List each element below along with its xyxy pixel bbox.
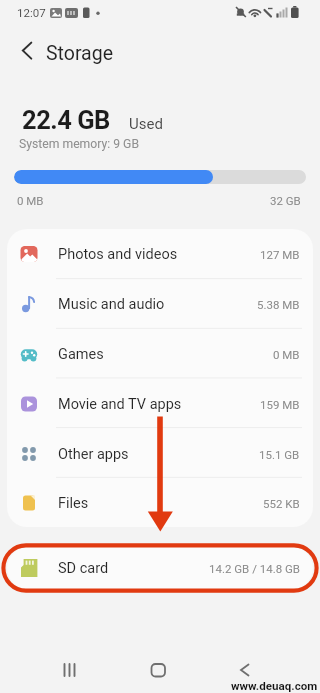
staticText: SD card [58, 560, 109, 577]
staticText: Games [58, 346, 104, 363]
staticText: 552 KB [263, 497, 300, 510]
button[interactable] [106, 650, 213, 690]
button[interactable] [213, 650, 320, 690]
button[interactable]: Files [7, 479, 313, 527]
button[interactable] [8, 38, 38, 66]
staticText: 0 MB [273, 348, 300, 361]
staticText: 15.1 GB [259, 448, 300, 461]
button[interactable]: Games [7, 329, 313, 379]
staticText: 22.4 GB [22, 105, 110, 135]
staticText: 5.38 MB [257, 298, 300, 311]
staticText: Used [129, 115, 163, 133]
staticText: Photos and videos [58, 246, 178, 263]
staticText: 0 MB [17, 194, 44, 207]
staticText: Music and audio [58, 296, 165, 313]
staticText: Files [58, 495, 89, 512]
staticText: www.deuaq.com [231, 679, 318, 693]
button[interactable]: Other apps [7, 429, 313, 479]
staticText: 32 GB [270, 194, 301, 207]
staticText: Movie and TV apps [58, 396, 182, 413]
staticText: 14.2 GB / 14.8 GB [209, 562, 300, 575]
staticText: Storage [46, 42, 114, 65]
button[interactable] [0, 650, 106, 690]
button[interactable]: SD card [7, 547, 313, 589]
staticText: 127 MB [260, 248, 300, 261]
staticText: System memory: 9 GB [19, 137, 139, 151]
staticText: 159 MB [260, 398, 300, 411]
button[interactable]: Music and audio [7, 279, 313, 329]
button[interactable]: Photos and videos [7, 229, 313, 279]
staticText: 12:07 [17, 6, 46, 19]
button[interactable]: Movie and TV apps [7, 379, 313, 429]
staticText: Other apps [58, 446, 129, 463]
